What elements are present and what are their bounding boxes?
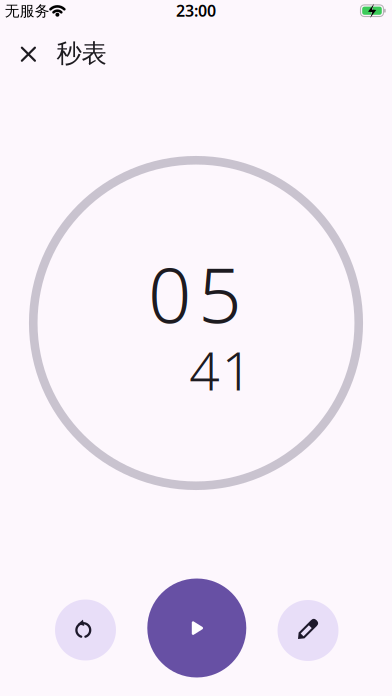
staticText: 0 xyxy=(148,243,191,344)
staticText: 4 xyxy=(189,334,219,405)
staticText: 秒表 xyxy=(57,38,107,69)
staticText: 1 xyxy=(222,334,252,405)
button[interactable]: 重置 xyxy=(55,599,116,660)
button[interactable]: 编辑 xyxy=(277,600,338,661)
staticText: 无服务 xyxy=(5,2,50,20)
button[interactable]: 关闭 xyxy=(8,34,48,74)
staticText: 5 xyxy=(198,243,241,344)
staticText: 23:00 xyxy=(176,0,216,21)
button[interactable]: 开始 xyxy=(147,578,246,677)
